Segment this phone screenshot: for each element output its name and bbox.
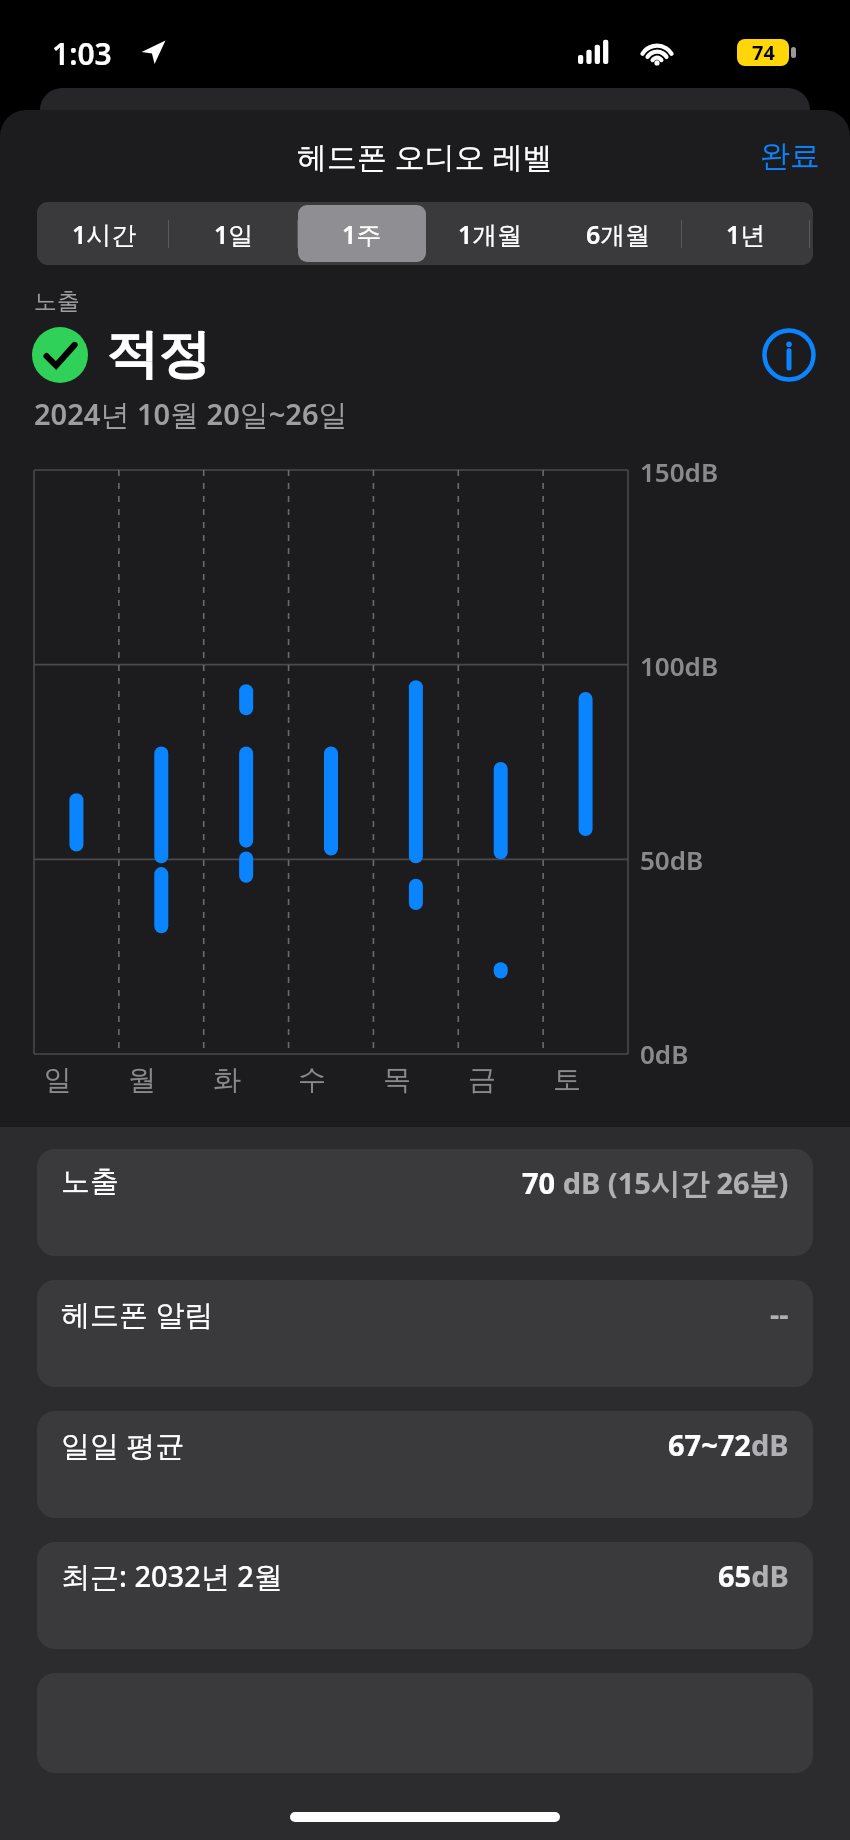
staticText: 수 bbox=[298, 1062, 326, 1097]
staticText: -- bbox=[770, 1294, 789, 1333]
staticText: 70 dB (15시간 26분) bbox=[522, 1163, 789, 1203]
staticText: 65dB bbox=[718, 1556, 789, 1595]
staticText: 완료 bbox=[760, 137, 820, 175]
staticText: 67~72dB bbox=[668, 1425, 789, 1464]
staticText: 100dB bbox=[640, 648, 719, 683]
button[interactable]: 1시간 bbox=[40, 205, 169, 262]
staticText: 최근: 2032년 2월 bbox=[61, 1556, 283, 1596]
button[interactable]: 완료 bbox=[730, 123, 850, 189]
staticText: 6개월 bbox=[586, 217, 651, 251]
staticText: 2024년 10월 20일~26일 bbox=[34, 394, 348, 434]
staticText: 토 bbox=[553, 1062, 581, 1097]
staticText: 목 bbox=[383, 1062, 411, 1097]
staticText: 1개월 bbox=[458, 217, 523, 251]
staticText: 일일 평균 bbox=[61, 1425, 185, 1465]
staticText: 금 bbox=[468, 1062, 496, 1097]
staticText: 1주 bbox=[342, 217, 382, 251]
staticText: 0dB bbox=[640, 1036, 689, 1071]
staticText: 적정 bbox=[106, 322, 210, 388]
button[interactable]: 헤드폰 알림 bbox=[37, 1280, 813, 1387]
button[interactable]: 정보 bbox=[762, 328, 816, 382]
button[interactable]: 1년 bbox=[682, 205, 810, 262]
button[interactable]: 1주 bbox=[298, 205, 426, 262]
staticText: 노출 bbox=[61, 1163, 119, 1200]
staticText: 1일 bbox=[214, 217, 254, 251]
staticText: 1시간 bbox=[72, 217, 137, 251]
button[interactable]: 노출 bbox=[37, 1149, 813, 1256]
staticText: 150dB bbox=[640, 454, 719, 489]
staticText: 헤드폰 오디오 레벨 bbox=[297, 136, 553, 177]
staticText: 화 bbox=[213, 1062, 241, 1097]
staticText: 노출 bbox=[34, 287, 80, 316]
button[interactable]: 1일 bbox=[169, 205, 298, 262]
button[interactable]: 최근: 2032년 2월 bbox=[37, 1542, 813, 1649]
button[interactable]: 6개월 bbox=[554, 205, 682, 262]
button[interactable]: 1개월 bbox=[426, 205, 554, 262]
staticText: 1:03 bbox=[52, 33, 112, 74]
staticText: 일 bbox=[44, 1062, 72, 1097]
staticText: 헤드폰 알림 bbox=[61, 1294, 214, 1334]
staticText: 1년 bbox=[726, 217, 766, 251]
button[interactable]: 일일 평균 bbox=[37, 1411, 813, 1518]
staticText: 74 bbox=[752, 39, 775, 66]
staticText: 50dB bbox=[640, 842, 704, 877]
staticText: 월 bbox=[128, 1062, 156, 1097]
